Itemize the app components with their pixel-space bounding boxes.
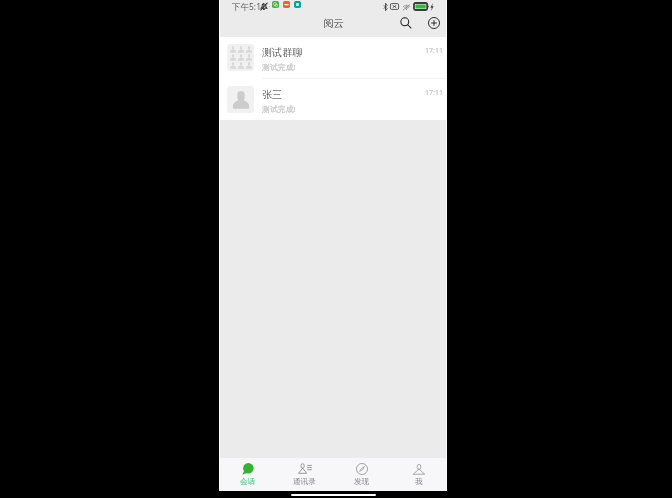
button[interactable]: 我 (390, 459, 447, 491)
staticText: 会话 (240, 477, 256, 487)
staticText: 张三 (262, 88, 283, 101)
button[interactable]: 通讯录 (276, 458, 333, 491)
button[interactable]: 会话 (219, 458, 276, 491)
staticText: 阅云 (323, 17, 344, 30)
staticText: 我 (415, 477, 423, 487)
staticText: 17:11 (425, 88, 443, 98)
button[interactable]: 发现 (333, 458, 390, 491)
staticText: 17:11 (425, 46, 443, 56)
button[interactable]: 张三 (219, 79, 447, 120)
button[interactable]: 测试群聊 (219, 37, 447, 78)
staticText: 测试完成! (262, 62, 296, 73)
staticText: 通讯录 (293, 477, 316, 487)
staticText: 发现 (354, 477, 370, 487)
staticText: 测试群聊 (262, 46, 303, 59)
staticText: 测试完成! (262, 104, 296, 115)
button[interactable]: Add (424, 13, 444, 33)
button[interactable]: Search (396, 13, 416, 33)
staticText: 下午5:11 (232, 1, 266, 13)
